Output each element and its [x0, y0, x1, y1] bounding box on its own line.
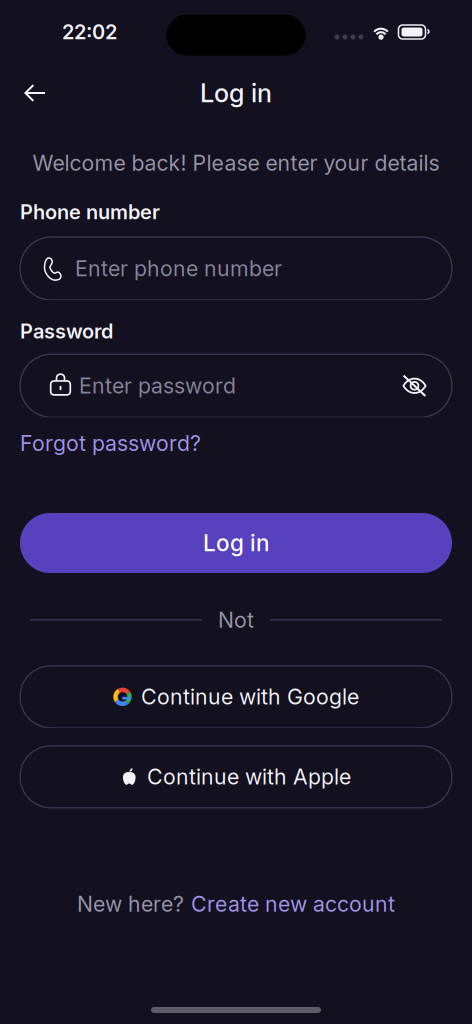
staticText: Forgot password? — [20, 430, 201, 456]
button[interactable]: Forgot password? — [20, 427, 201, 459]
button[interactable]: Continue with Google — [20, 666, 452, 728]
staticText: 22:02 — [62, 20, 117, 44]
staticText: Phone number — [20, 200, 160, 224]
staticText: Log in — [200, 78, 272, 108]
staticText: Not — [218, 607, 254, 633]
button[interactable]: Continue with Apple — [20, 746, 452, 808]
staticText: Create new account — [191, 891, 395, 917]
button[interactable]: Show password — [402, 374, 427, 397]
staticText: Continue with Google — [141, 684, 359, 710]
staticText: Enter password — [79, 373, 236, 399]
staticText: Password — [20, 319, 113, 343]
staticText: New here? — [77, 891, 184, 917]
button[interactable]: Log in — [20, 513, 452, 573]
staticText: Enter phone number — [75, 256, 282, 281]
staticText: Welcome back! Please enter your details — [32, 150, 439, 176]
button[interactable]: Create new account — [191, 891, 395, 917]
button[interactable]: Back — [12, 71, 58, 115]
staticText: Log in — [203, 529, 269, 557]
staticText: Continue with Apple — [147, 764, 351, 790]
